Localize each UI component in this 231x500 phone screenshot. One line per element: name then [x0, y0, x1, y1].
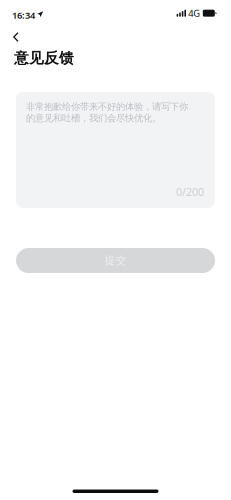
- staticText: 非常抱歉给你带来不好的体验，请写下你的意见和吐槽，我们会尽快优化。: [26, 101, 188, 124]
- staticText: 提交: [104, 254, 126, 267]
- staticText: 意见反馈: [14, 49, 74, 67]
- staticText: 4G: [188, 7, 200, 19]
- staticText: 0/200: [176, 185, 204, 199]
- button[interactable]: 提交: [16, 248, 215, 273]
- staticText: 16:34: [12, 9, 35, 21]
- button[interactable]: Back: [0, 22, 32, 44]
